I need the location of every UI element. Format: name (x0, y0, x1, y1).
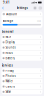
button[interactable]: Account (1, 11, 42, 17)
button[interactable]: Storage (1, 17, 42, 28)
button[interactable]: Back (0, 5, 5, 11)
button[interactable]: Wallet (1, 79, 42, 84)
button[interactable]: Battery (1, 56, 42, 61)
staticText: Display (5, 40, 14, 44)
staticText: General (2, 30, 14, 33)
staticText: Account (6, 12, 17, 16)
button[interactable]: Display (1, 40, 42, 45)
staticText: 9:41 (3, 1, 10, 4)
staticText: Safari (5, 90, 11, 94)
button[interactable]: Photos (1, 73, 42, 78)
staticText: Battery (5, 56, 14, 60)
staticText: Storage (3, 19, 14, 23)
staticText: Wallet (5, 79, 13, 83)
button[interactable]: Search (33, 6, 37, 10)
button[interactable]: Focus (1, 50, 42, 55)
staticText: Privacy (5, 69, 13, 72)
button[interactable]: Sounds (1, 45, 42, 50)
staticText: Photos (5, 74, 15, 78)
staticText: Camera (5, 85, 14, 88)
button[interactable]: More (38, 6, 42, 10)
button[interactable]: Camera (1, 84, 42, 89)
staticText: 38 GB (37, 20, 41, 22)
button[interactable]: Safari (1, 89, 42, 94)
staticText: Sounds (5, 46, 15, 49)
staticText: Settings (16, 6, 27, 10)
button[interactable]: Privacy (1, 68, 42, 73)
staticText: Wi‑Fi (5, 35, 11, 39)
button[interactable]: Wi‑Fi (1, 34, 42, 39)
staticText: Focus (5, 51, 12, 55)
staticText: Services (2, 64, 13, 67)
